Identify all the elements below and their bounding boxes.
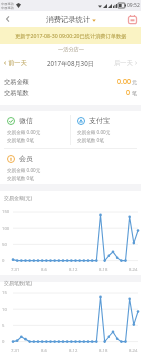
button[interactable]: Calendar [126,13,138,25]
staticText: 更新于2017-08-30 09:00:20已统计消费订单数据 [15,32,127,39]
staticText: 微信 [19,116,33,125]
staticText: 后一天 [114,59,133,67]
staticText: 0 [2,258,5,264]
staticText: 会员 [19,154,33,163]
staticText: 支付宝 [89,116,110,125]
staticText: 8.18 [99,348,108,354]
button[interactable]: 会员 [0,149,70,181]
staticText: 中国移动 [1,6,14,10]
staticText: 消费记录统计 [46,15,91,24]
staticText: 元 [132,79,137,85]
staticText: 8.18 [99,267,108,273]
button[interactable]: Back [0,11,16,27]
staticText: 7.31 [11,348,20,354]
staticText: 0 [2,339,5,345]
staticText: 0 [126,88,131,97]
staticText: 中国移动 [1,2,14,6]
staticText: 交易笔数(笔) [4,280,33,287]
staticText: 交易金额 0.00元 [77,129,111,135]
staticText: 09:52 [127,2,140,9]
button[interactable]: 支付宝 [70,111,141,143]
staticText: 交易金额 0.00元 [7,167,41,173]
staticText: 8.6 [41,267,47,273]
button[interactable]: 后一天 [114,59,138,67]
staticText: 7.31 [11,267,20,273]
staticText: 8.12 [69,267,78,273]
staticText: 100 [2,226,10,232]
staticText: 交易笔数 0笔 [7,137,34,143]
button[interactable]: 微信 [0,111,70,143]
staticText: 交易金额(元) [4,195,33,202]
staticText: 8.24 [129,267,138,273]
staticText: 5 [2,323,5,329]
staticText: 8.6 [41,348,47,354]
staticText: 2017年08月30日 [47,59,94,67]
staticText: 150 [2,209,10,215]
staticText: 8.12 [69,348,78,354]
button[interactable]: 前一天 [3,59,27,67]
staticText: 15 [2,290,7,296]
staticText: —活分店— [58,45,84,52]
staticText: 10 [2,307,7,313]
staticText: 交易笔数 [4,89,29,97]
staticText: 交易金额 [4,78,29,86]
staticText: 交易笔数 0笔 [77,137,104,143]
staticText: 0.00 [117,77,131,86]
staticText: 前一天 [8,59,27,67]
staticText: 50 [2,242,7,248]
staticText: 8.24 [129,348,138,354]
staticText: 交易金额 0.00元 [7,129,41,135]
staticText: 笔 [132,90,137,96]
staticText: 交易笔数 0笔 [7,175,34,181]
